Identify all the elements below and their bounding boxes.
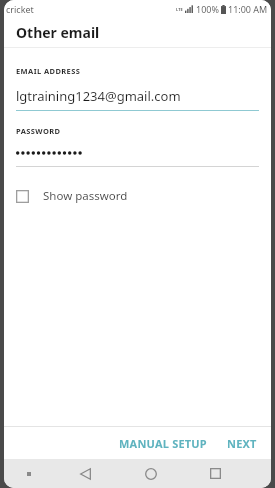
button[interactable]: Home [118, 459, 183, 488]
button[interactable]: Recent apps [183, 459, 248, 488]
button[interactable]: Back [53, 459, 118, 488]
button[interactable] [16, 146, 259, 167]
button[interactable]: lgtraining1234@gmail.com [16, 87, 259, 111]
staticText: cricket [6, 3, 34, 15]
button[interactable]: Show password [16, 186, 128, 206]
staticText: Other email [16, 23, 100, 42]
staticText: MANUAL SETUP [119, 436, 207, 451]
staticText: lgtraining1234@gmail.com [16, 87, 181, 105]
staticText: PASSWORD [16, 126, 61, 136]
button[interactable]: NEXT [219, 430, 265, 457]
staticText: 11:00 AM [228, 3, 268, 15]
staticText: EMAIL ADDRESS [16, 66, 81, 76]
staticText: 100% [196, 3, 219, 15]
staticText: Show password [43, 188, 128, 204]
button[interactable]: MANUAL SETUP [111, 430, 215, 457]
staticText: NEXT [227, 436, 257, 451]
staticText: LTE [176, 7, 183, 12]
button[interactable]: Capture screen [4, 459, 53, 488]
